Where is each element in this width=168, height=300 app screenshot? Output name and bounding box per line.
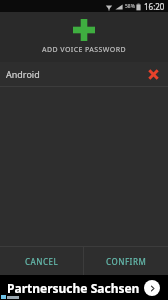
button[interactable]: CONFIRM (84, 247, 168, 275)
staticText: 58% (125, 3, 135, 10)
button[interactable]: Open ad (144, 280, 160, 296)
staticText: ADD VOICE PASSWORD (42, 45, 126, 55)
button[interactable]: Partnersuche Sachsen (0, 275, 168, 300)
button[interactable]: Delete (144, 65, 162, 83)
staticText: CONFIRM (106, 256, 147, 267)
button[interactable]: Add voice password (0, 12, 168, 62)
other: Add voice password (73, 19, 95, 41)
staticText: Partnersuche Sachsen (7, 280, 140, 296)
staticText: 16:20 (144, 1, 165, 12)
staticText: CANCEL (25, 256, 59, 267)
staticText: Android (6, 68, 40, 80)
button[interactable]: CANCEL (0, 247, 83, 275)
button[interactable]: Android (0, 62, 168, 86)
